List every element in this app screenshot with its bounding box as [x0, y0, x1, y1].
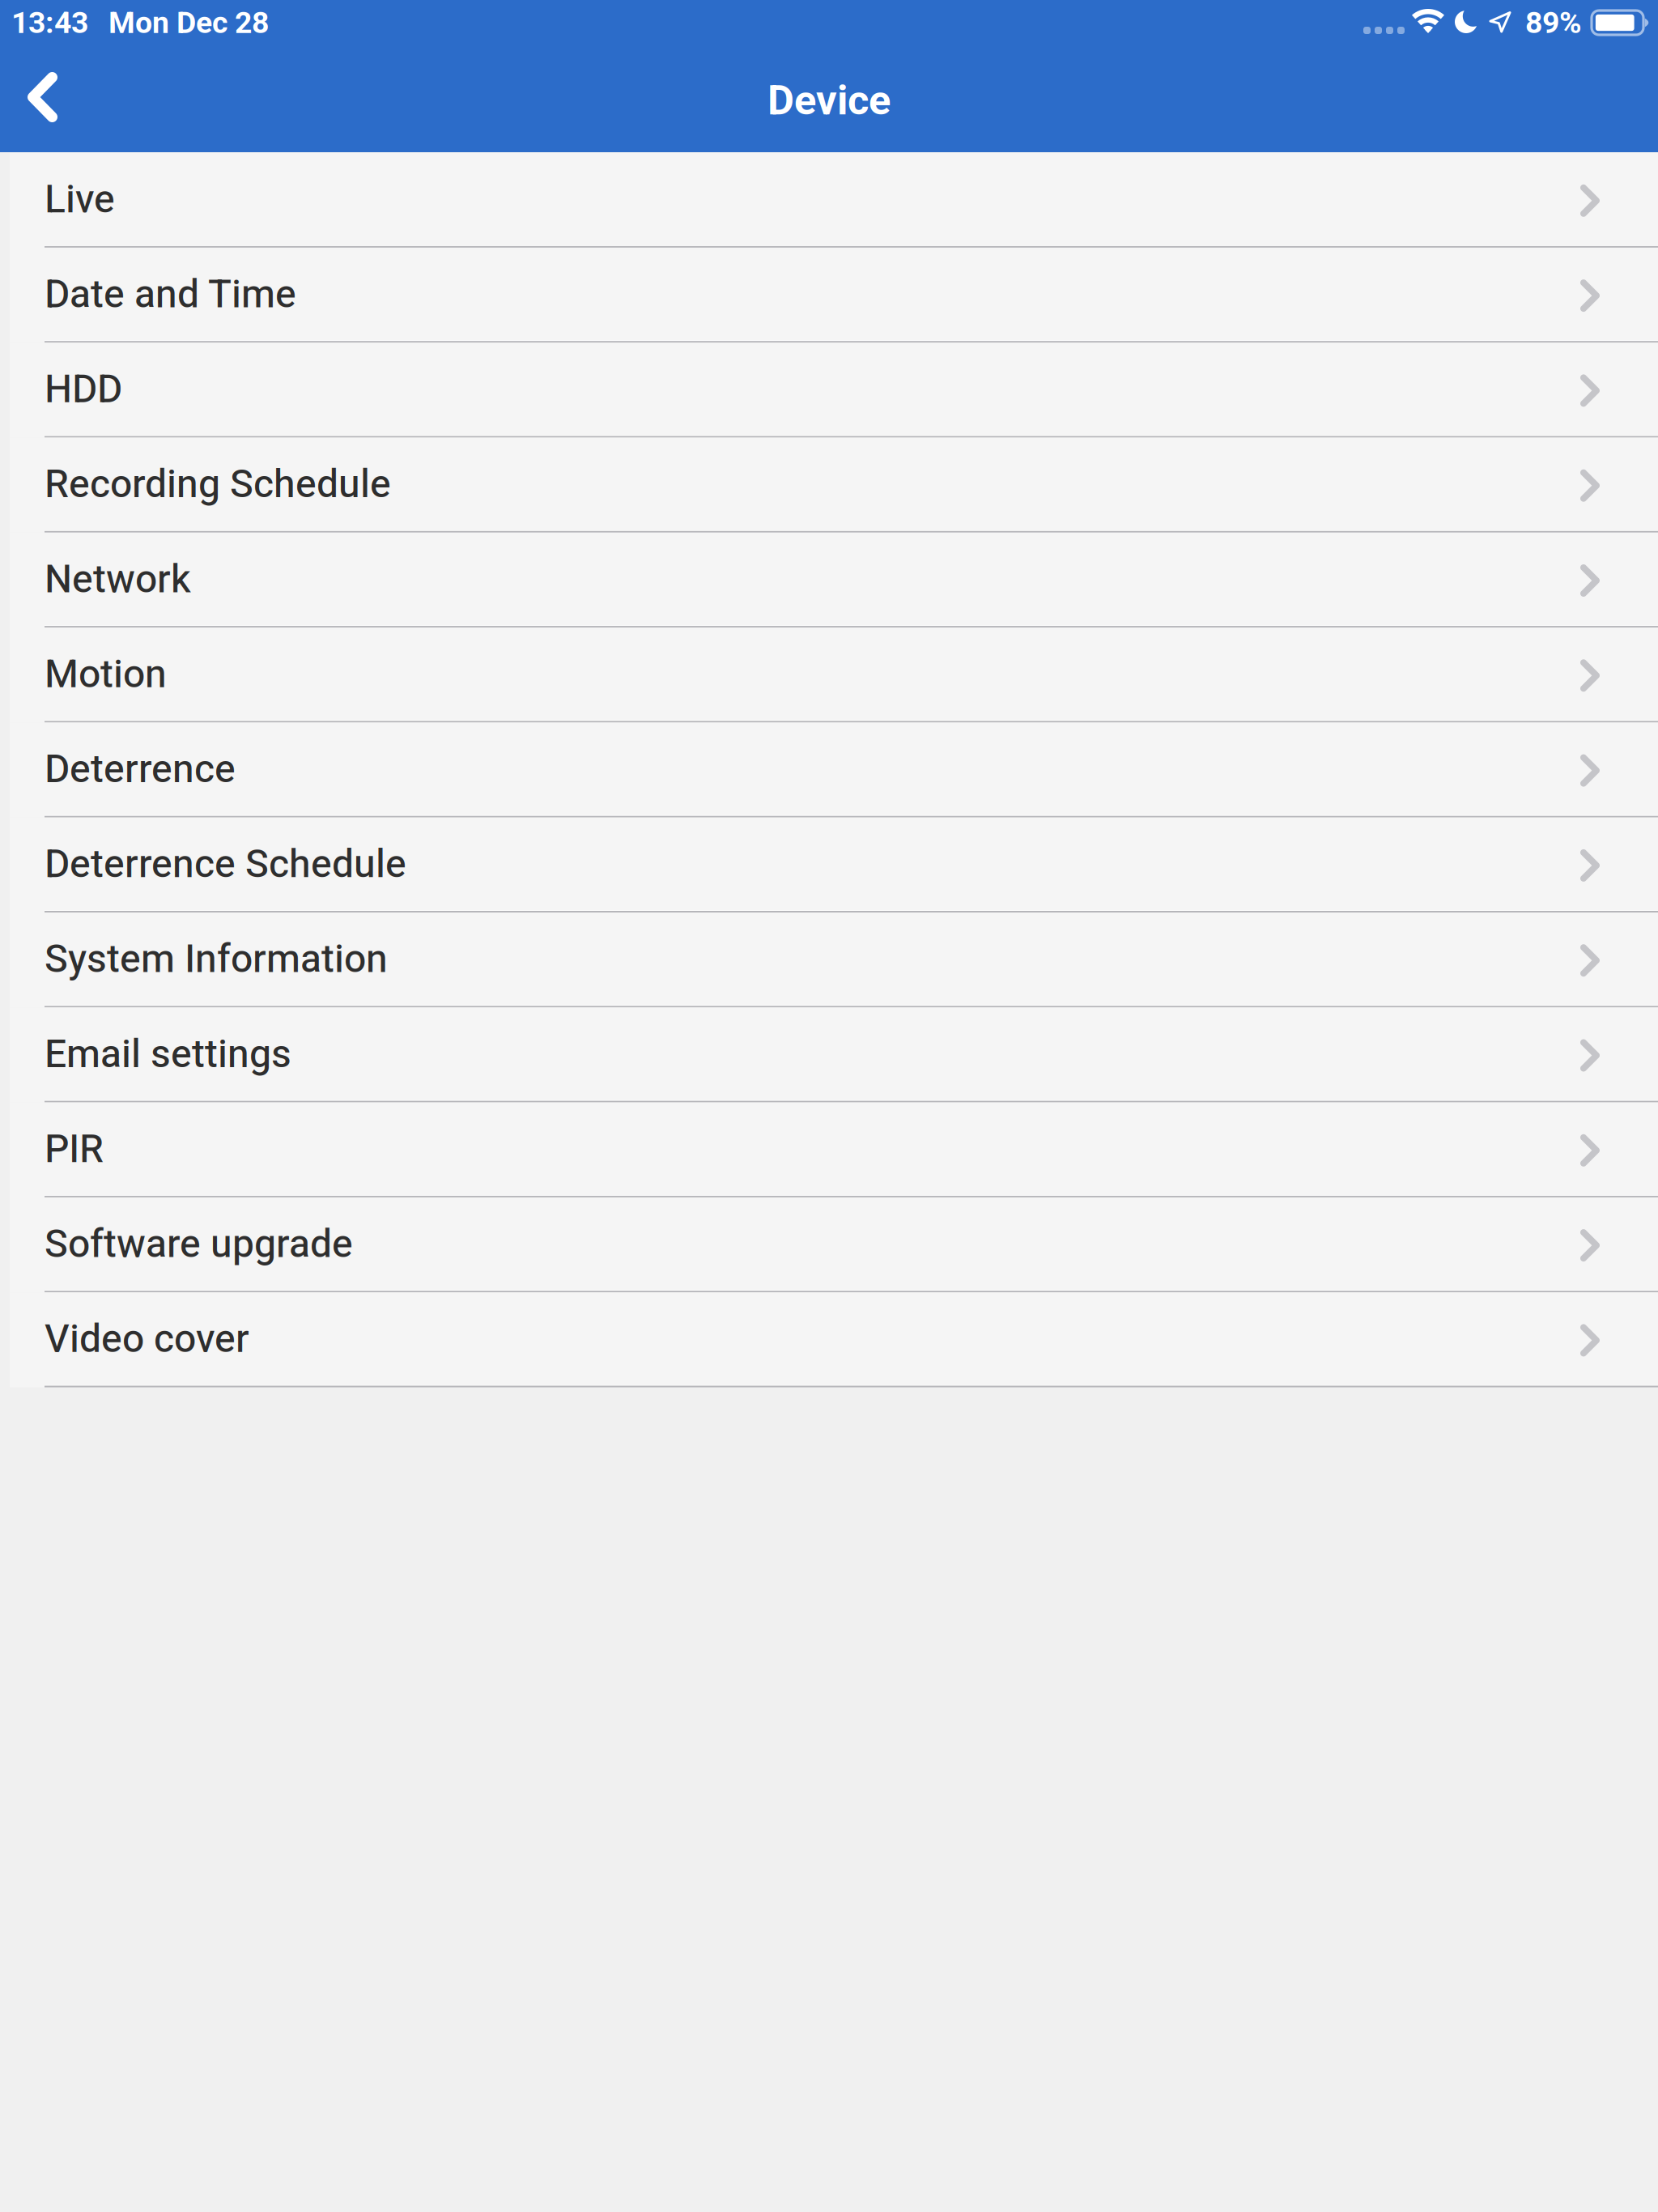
button[interactable]: Deterrence Schedule [0, 818, 1658, 912]
staticText: HDD [45, 366, 122, 412]
staticText: Live [45, 176, 115, 222]
button[interactable]: Email settings [0, 1007, 1658, 1102]
staticText: Network [45, 556, 191, 602]
button[interactable]: Date and Time [0, 248, 1658, 343]
button[interactable]: Live [0, 153, 1658, 248]
staticText: Software upgrade [45, 1221, 353, 1266]
staticText: 13:43 [11, 5, 88, 40]
staticText: Mon Dec 28 [108, 5, 269, 40]
staticText: System Information [45, 936, 388, 982]
button[interactable]: Network [0, 533, 1658, 628]
button[interactable]: HDD [0, 343, 1658, 438]
button[interactable]: System Information [0, 912, 1658, 1007]
staticText: Device [767, 76, 891, 124]
staticText: Deterrence Schedule [45, 841, 406, 887]
staticText: Email settings [45, 1031, 291, 1077]
button[interactable]: Recording Schedule [0, 438, 1658, 533]
button[interactable]: Video cover [0, 1292, 1658, 1387]
button[interactable]: Motion [0, 628, 1658, 723]
staticText: PIR [45, 1126, 104, 1172]
button[interactable]: Deterrence [0, 723, 1658, 818]
staticText: Date and Time [45, 271, 296, 317]
staticText: 89% [1525, 5, 1582, 40]
button[interactable]: Back [0, 49, 85, 152]
staticText: Deterrence [45, 746, 236, 792]
button[interactable]: PIR [0, 1102, 1658, 1197]
staticText: Recording Schedule [45, 461, 391, 507]
staticText: Motion [45, 651, 167, 697]
button[interactable]: Software upgrade [0, 1197, 1658, 1292]
staticText: Video cover [45, 1316, 249, 1361]
